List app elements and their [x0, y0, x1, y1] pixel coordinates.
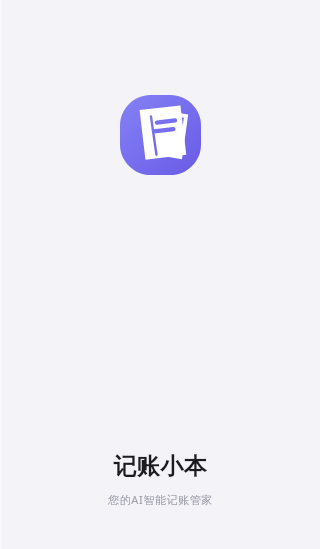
staticText: 记账小本 — [113, 452, 207, 481]
button[interactable]: 记账小本 应用图标 — [120, 95, 201, 175]
staticText: 您的AI智能记账管家 — [108, 492, 213, 507]
